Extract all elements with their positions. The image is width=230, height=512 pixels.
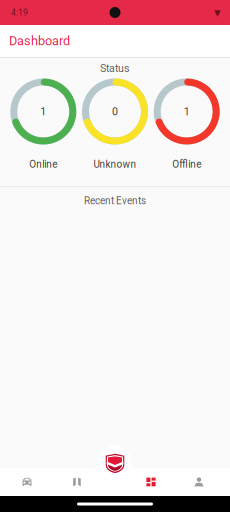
staticText: Unknown [93, 158, 136, 170]
staticText: ▾ [214, 5, 221, 20]
button[interactable]: Profile [176, 468, 222, 496]
staticText: 0 [112, 105, 118, 118]
staticText: Online [29, 158, 57, 170]
button[interactable]: Security [96, 443, 134, 481]
staticText: Status [100, 62, 130, 74]
staticText: 1 [184, 105, 190, 118]
button[interactable]: Map [54, 468, 100, 496]
staticText: Dashboard [9, 34, 70, 48]
staticText: Recent Events [84, 195, 146, 207]
button[interactable]: Dashboard [126, 468, 176, 496]
button[interactable]: Vehicles [0, 468, 54, 496]
staticText: 1 [40, 105, 46, 118]
staticText: 4:19 [11, 7, 28, 18]
staticText: Offline [172, 158, 201, 170]
